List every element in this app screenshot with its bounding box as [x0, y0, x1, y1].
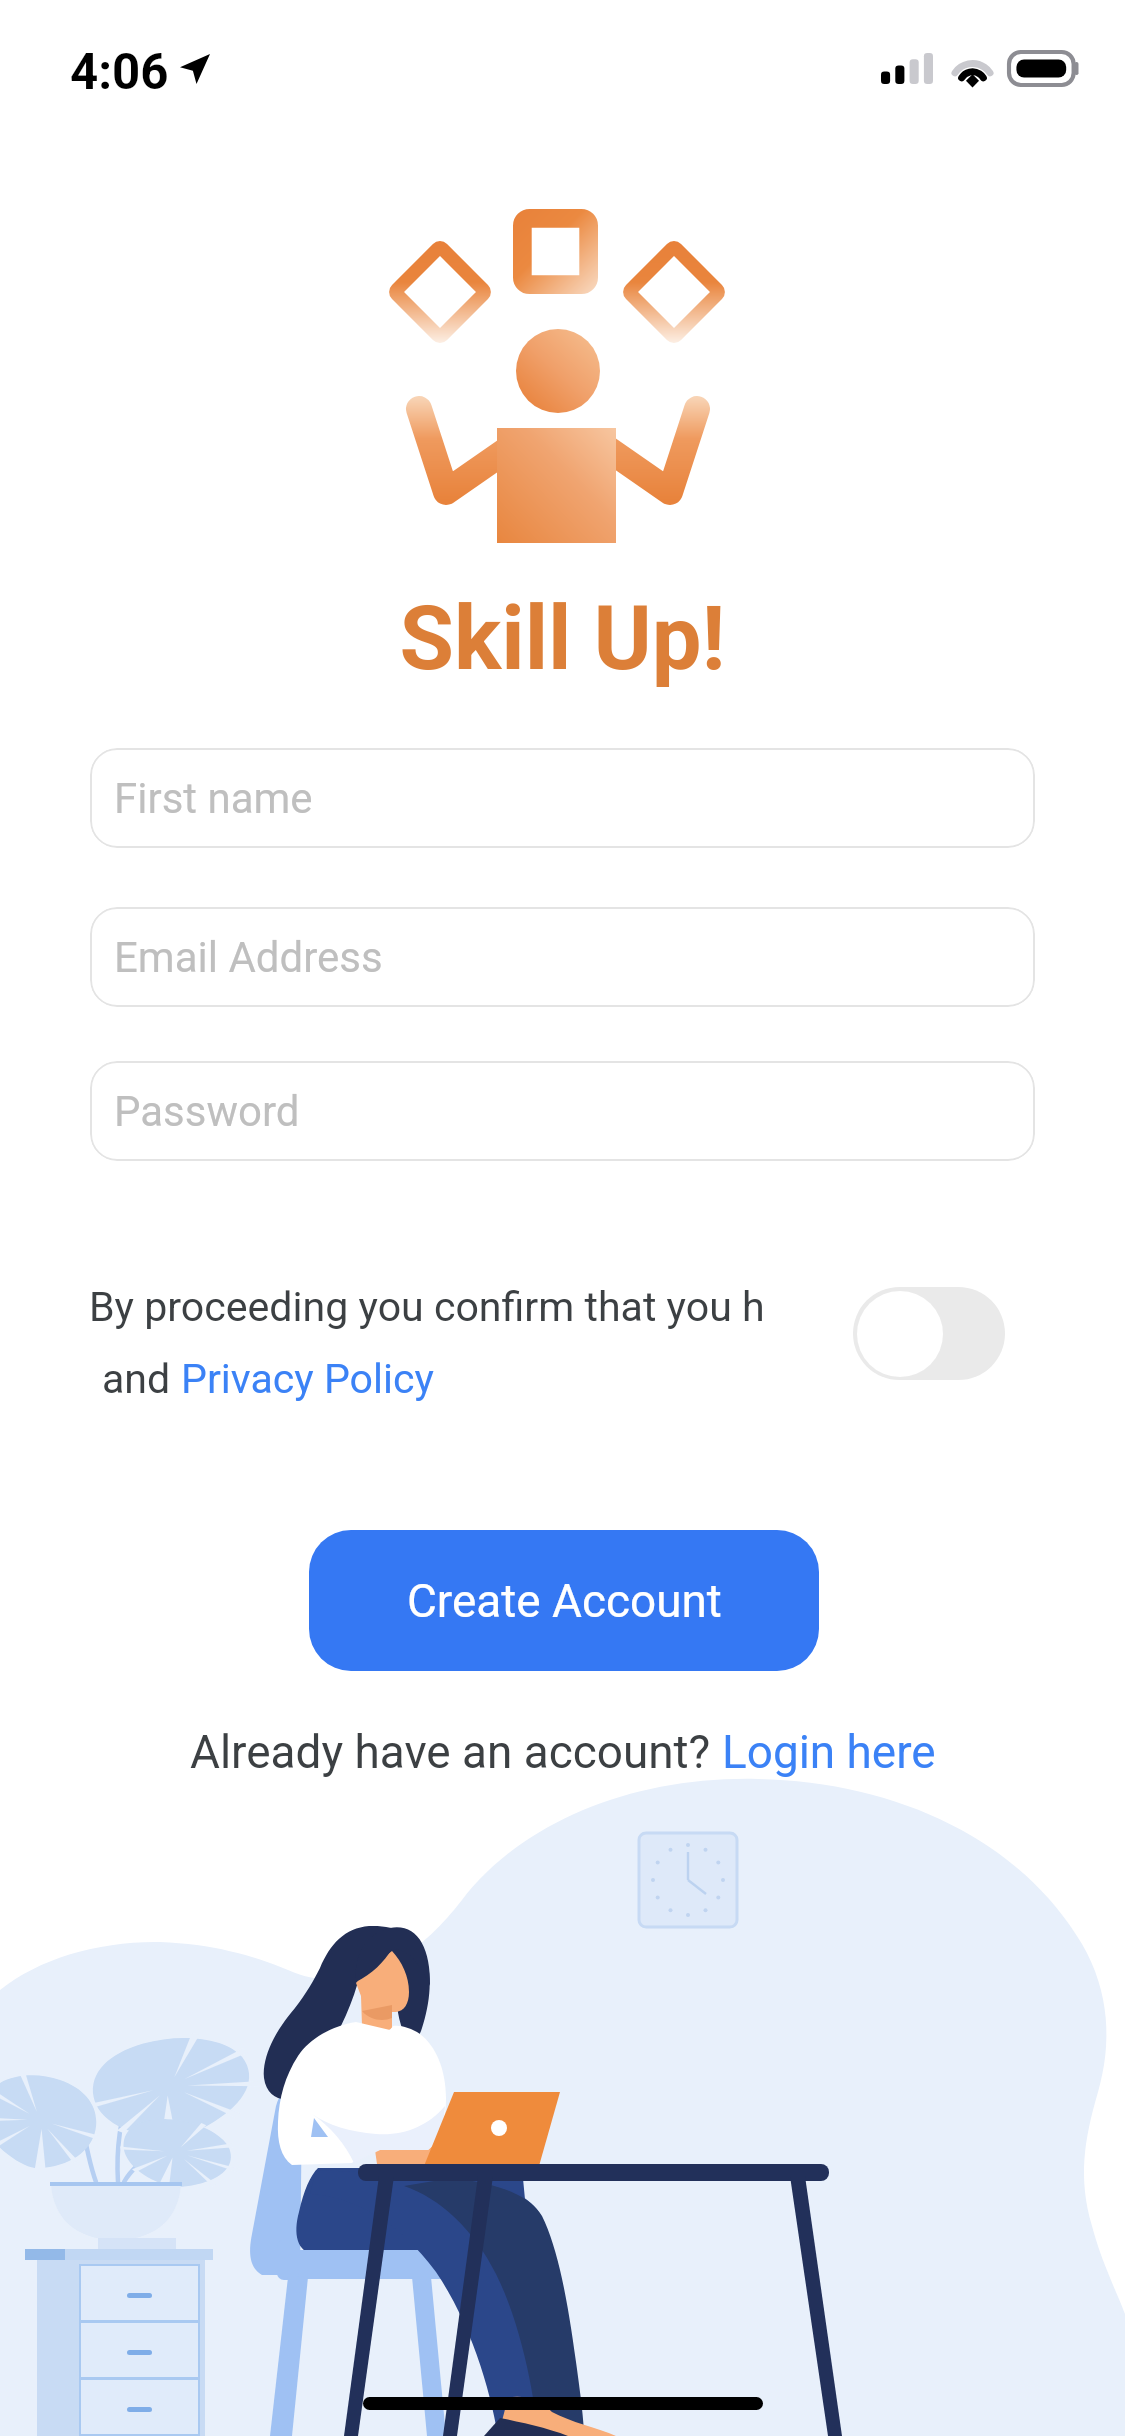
staticText: Privacy Policy [181, 1355, 434, 1403]
button[interactable]: First name [90, 748, 1035, 848]
button[interactable]: Login here [722, 1725, 936, 1779]
button[interactable]: Email Address [90, 907, 1035, 1007]
staticText: Login here [722, 1725, 936, 1779]
staticText: Already have an account? [190, 1725, 722, 1779]
staticText: and [102, 1355, 181, 1403]
staticText: Skill Up! [0, 587, 1125, 691]
staticText: Password [114, 1087, 300, 1136]
staticText: Create Account [407, 1574, 722, 1628]
button[interactable]: Password [90, 1061, 1035, 1161]
staticText: 4:06 [70, 43, 169, 101]
staticText: Email Address [114, 933, 383, 982]
staticText: First name [114, 774, 313, 823]
button[interactable]: Create Account [309, 1530, 819, 1671]
staticText: By proceeding you confirm that you h [89, 1283, 765, 1331]
button[interactable]: Privacy Policy [181, 1355, 434, 1403]
button[interactable]: Accept terms and privacy policy [853, 1287, 1005, 1380]
